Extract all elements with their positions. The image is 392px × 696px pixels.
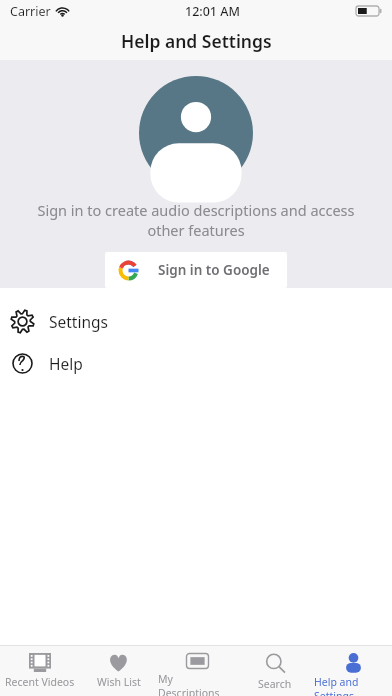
staticText: My Descriptions — [158, 672, 236, 696]
staticText: Recent Videos — [5, 675, 75, 689]
staticText: 12:01 AM — [185, 3, 240, 20]
button[interactable]: Settings — [0, 300, 392, 342]
staticText: Help — [49, 353, 83, 374]
staticText: Wish List — [97, 675, 141, 689]
staticText: Help and Settings — [121, 29, 272, 53]
staticText: Search — [258, 677, 292, 691]
staticText: Sign in to create audio descriptions and… — [26, 200, 366, 240]
button[interactable]: Wish List — [79, 648, 158, 696]
button[interactable]: Sign in to Google — [105, 252, 287, 288]
staticText: Sign in to Google — [158, 261, 270, 279]
button[interactable]: My Descriptions — [158, 648, 236, 696]
button[interactable]: Search — [236, 648, 314, 696]
staticText: Carrier — [10, 3, 51, 20]
button[interactable]: Help and Settings — [314, 648, 392, 696]
button[interactable]: Help — [0, 342, 392, 384]
staticText: Help and Settings — [314, 675, 392, 696]
button[interactable]: Recent Videos — [0, 648, 79, 696]
staticText: Settings — [49, 311, 108, 332]
